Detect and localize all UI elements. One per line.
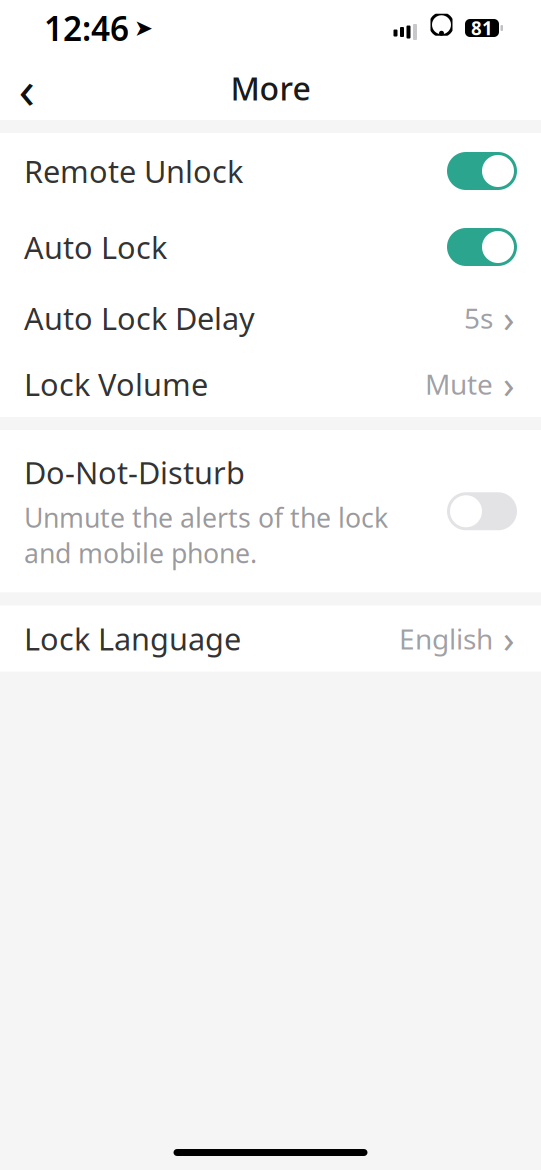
staticText: Auto Lock: [24, 227, 167, 267]
staticText: English: [399, 620, 493, 657]
button[interactable]: Auto Lock Delay: [0, 285, 541, 351]
staticText: ›: [503, 614, 515, 663]
staticText: Lock Language: [24, 618, 241, 659]
staticText: More: [230, 67, 310, 109]
staticText: Unmute the alerts of the lock and mobile…: [24, 500, 388, 570]
staticText: Auto Lock Delay: [24, 298, 255, 338]
staticText: 12:46: [44, 6, 129, 50]
button[interactable]: Back: [0, 61, 54, 115]
button[interactable]: Do-Not-Disturb: [0, 430, 541, 593]
staticText: ›: [503, 359, 515, 409]
button[interactable]: Lock Volume: [0, 351, 541, 417]
button[interactable]: Lock Language: [0, 606, 541, 672]
staticText: ‹: [18, 53, 35, 123]
staticText: 5s: [464, 299, 493, 337]
staticText: Mute: [425, 365, 493, 403]
staticText: Remote Unlock: [24, 151, 243, 191]
staticText: ›: [503, 293, 515, 343]
button[interactable]: Auto Lock: [0, 209, 541, 285]
button[interactable]: Remote Unlock: [0, 133, 541, 209]
staticText: ➤: [134, 15, 153, 41]
staticText: 81: [471, 16, 493, 40]
staticText: Lock Volume: [24, 364, 208, 404]
staticText: Do-Not-Disturb: [24, 452, 245, 493]
